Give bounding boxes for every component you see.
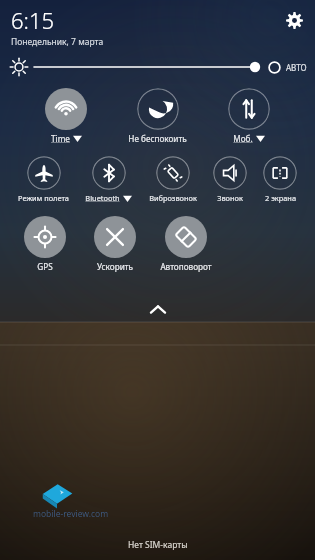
button[interactable]: Time bbox=[45, 88, 87, 144]
button[interactable]: Ускорить bbox=[94, 216, 136, 272]
staticText: Режим полета bbox=[18, 193, 69, 203]
staticText: Автоповорот bbox=[160, 261, 212, 272]
button[interactable]: Settings bbox=[282, 8, 306, 32]
staticText: Моб. bbox=[233, 133, 253, 144]
staticText: Понедельник, 7 марта bbox=[11, 36, 104, 48]
button[interactable]: GPS bbox=[24, 216, 66, 272]
button[interactable]: Brightness bbox=[34, 52, 263, 82]
staticText: GPS bbox=[37, 261, 53, 272]
button[interactable]: Не беспокоить bbox=[128, 88, 187, 144]
staticText: Не беспокоить bbox=[128, 133, 187, 144]
button[interactable]: 2 экрана bbox=[263, 156, 297, 203]
button[interactable]: Collapse bbox=[0, 296, 315, 322]
button[interactable]: Bluetooth bbox=[85, 156, 132, 203]
staticText: 6:15 bbox=[11, 5, 55, 35]
button[interactable]: Auto brightness bbox=[266, 59, 282, 75]
button[interactable]: Виброзвонок bbox=[149, 156, 197, 203]
button[interactable]: Автоповорот bbox=[160, 216, 212, 272]
staticText: Звонок bbox=[217, 193, 243, 203]
staticText: Нет SIM-карты bbox=[128, 539, 188, 551]
button[interactable]: Моб. bbox=[228, 88, 270, 144]
staticText: 2 экрана bbox=[265, 193, 296, 203]
staticText: Time bbox=[51, 133, 70, 144]
staticText: Bluetooth bbox=[85, 193, 120, 203]
staticText: mobile-review.com bbox=[33, 508, 109, 520]
staticText: АВТО bbox=[286, 62, 307, 73]
staticText: Виброзвонок bbox=[149, 193, 197, 203]
button[interactable]: Режим полета bbox=[18, 156, 69, 203]
staticText: Ускорить bbox=[97, 261, 133, 272]
button[interactable]: Звонок bbox=[213, 156, 247, 203]
